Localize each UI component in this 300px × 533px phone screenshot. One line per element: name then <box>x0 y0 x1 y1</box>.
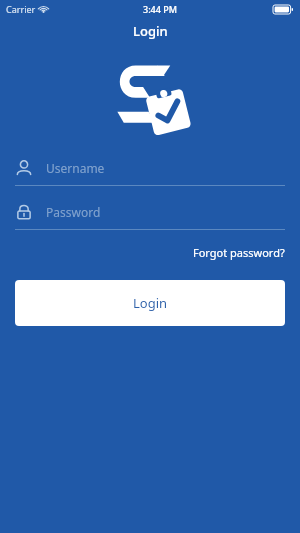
staticText: Username <box>46 160 105 176</box>
staticText: Password <box>46 204 101 220</box>
button[interactable]: Forgot password? <box>178 241 300 264</box>
button[interactable]: Password <box>0 199 300 230</box>
other: Username <box>15 159 33 177</box>
other: App logo <box>104 62 196 138</box>
staticText: Carrier <box>6 3 36 15</box>
button[interactable]: Username <box>0 155 300 186</box>
other: Password <box>15 203 33 221</box>
staticText: Login <box>133 22 168 40</box>
button[interactable]: Login <box>15 280 285 326</box>
staticText: Login <box>133 294 168 312</box>
staticText: 3:44 PM <box>143 3 177 15</box>
staticText: Forgot password? <box>193 245 285 260</box>
